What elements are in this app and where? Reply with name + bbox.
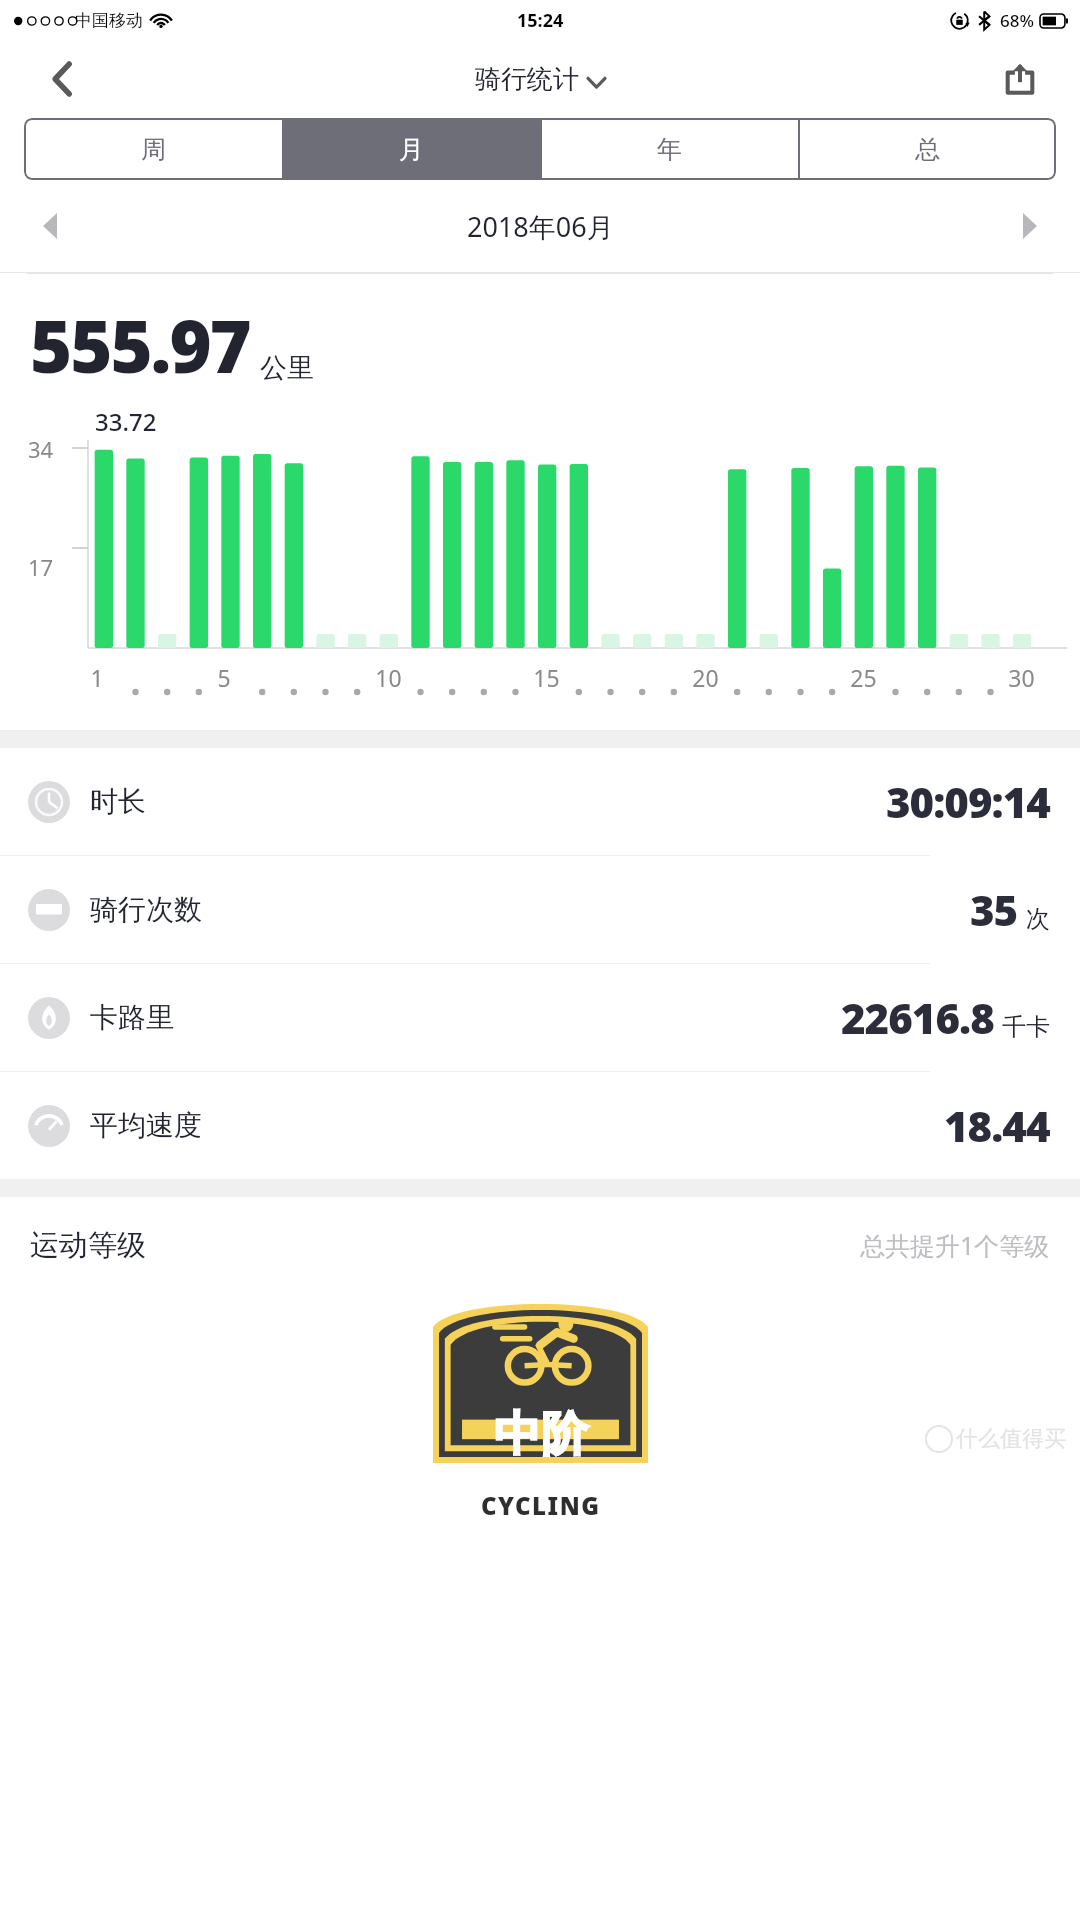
button[interactable]: 总 (798, 118, 1056, 180)
staticText: 30 (1008, 662, 1035, 693)
staticText: 千卡 (1002, 1012, 1050, 1042)
staticText: 555.97 (30, 296, 250, 394)
staticText: 1 (90, 662, 104, 693)
button[interactable]: Next month (1008, 204, 1052, 248)
staticText: 公里 (260, 351, 314, 385)
button[interactable]: Share (996, 55, 1044, 103)
staticText: CYCLING (481, 1489, 601, 1522)
staticText: 年 (657, 134, 682, 165)
staticText: 5 (217, 662, 231, 693)
staticText: 17 (28, 552, 54, 582)
button[interactable]: Previous month (28, 204, 72, 248)
button[interactable]: 周 (24, 118, 282, 180)
staticText: 时长 (90, 784, 146, 819)
staticText: 什么值得买 (956, 1425, 1066, 1453)
staticText: 30:09:14 (886, 773, 1050, 830)
staticText: 20 (692, 662, 719, 693)
staticText: 总 (915, 134, 940, 165)
staticText: 2018年06月 (467, 208, 614, 245)
button[interactable]: 骑行统计 (475, 63, 605, 96)
staticText: 月 (399, 134, 424, 165)
staticText: 卡路里 (90, 1000, 174, 1035)
staticText: 33.72 (95, 405, 157, 438)
button[interactable]: Back (40, 56, 86, 102)
button[interactable]: 月 (282, 118, 540, 180)
staticText: 10 (375, 662, 402, 693)
staticText: 34 (28, 434, 54, 464)
staticText: 18.44 (944, 1097, 1050, 1154)
staticText: 次 (1026, 904, 1050, 934)
button[interactable]: 年 (540, 118, 798, 180)
button[interactable]: 时长 (0, 748, 1080, 855)
staticText: 22616.8 (841, 989, 994, 1046)
staticText: 15 (533, 662, 560, 693)
staticText: 35 (970, 881, 1018, 938)
button[interactable]: 平均速度 (0, 1072, 1080, 1179)
staticText: 15:24 (517, 8, 564, 33)
staticText: 总共提升1个等级 (860, 1228, 1050, 1262)
staticText: 骑行次数 (90, 892, 202, 927)
button[interactable]: 卡路里 (0, 964, 1080, 1071)
staticText: 68% (1000, 9, 1034, 32)
staticText: 中国移动 (75, 10, 143, 31)
staticText: 运动等级 (30, 1227, 146, 1264)
staticText: 平均速度 (90, 1108, 202, 1143)
staticText: 周 (141, 134, 166, 165)
staticText: 骑行统计 (475, 63, 579, 96)
button[interactable]: 骑行次数 (0, 856, 1080, 963)
staticText: 中阶 (494, 1405, 588, 1464)
staticText: 25 (850, 662, 877, 693)
